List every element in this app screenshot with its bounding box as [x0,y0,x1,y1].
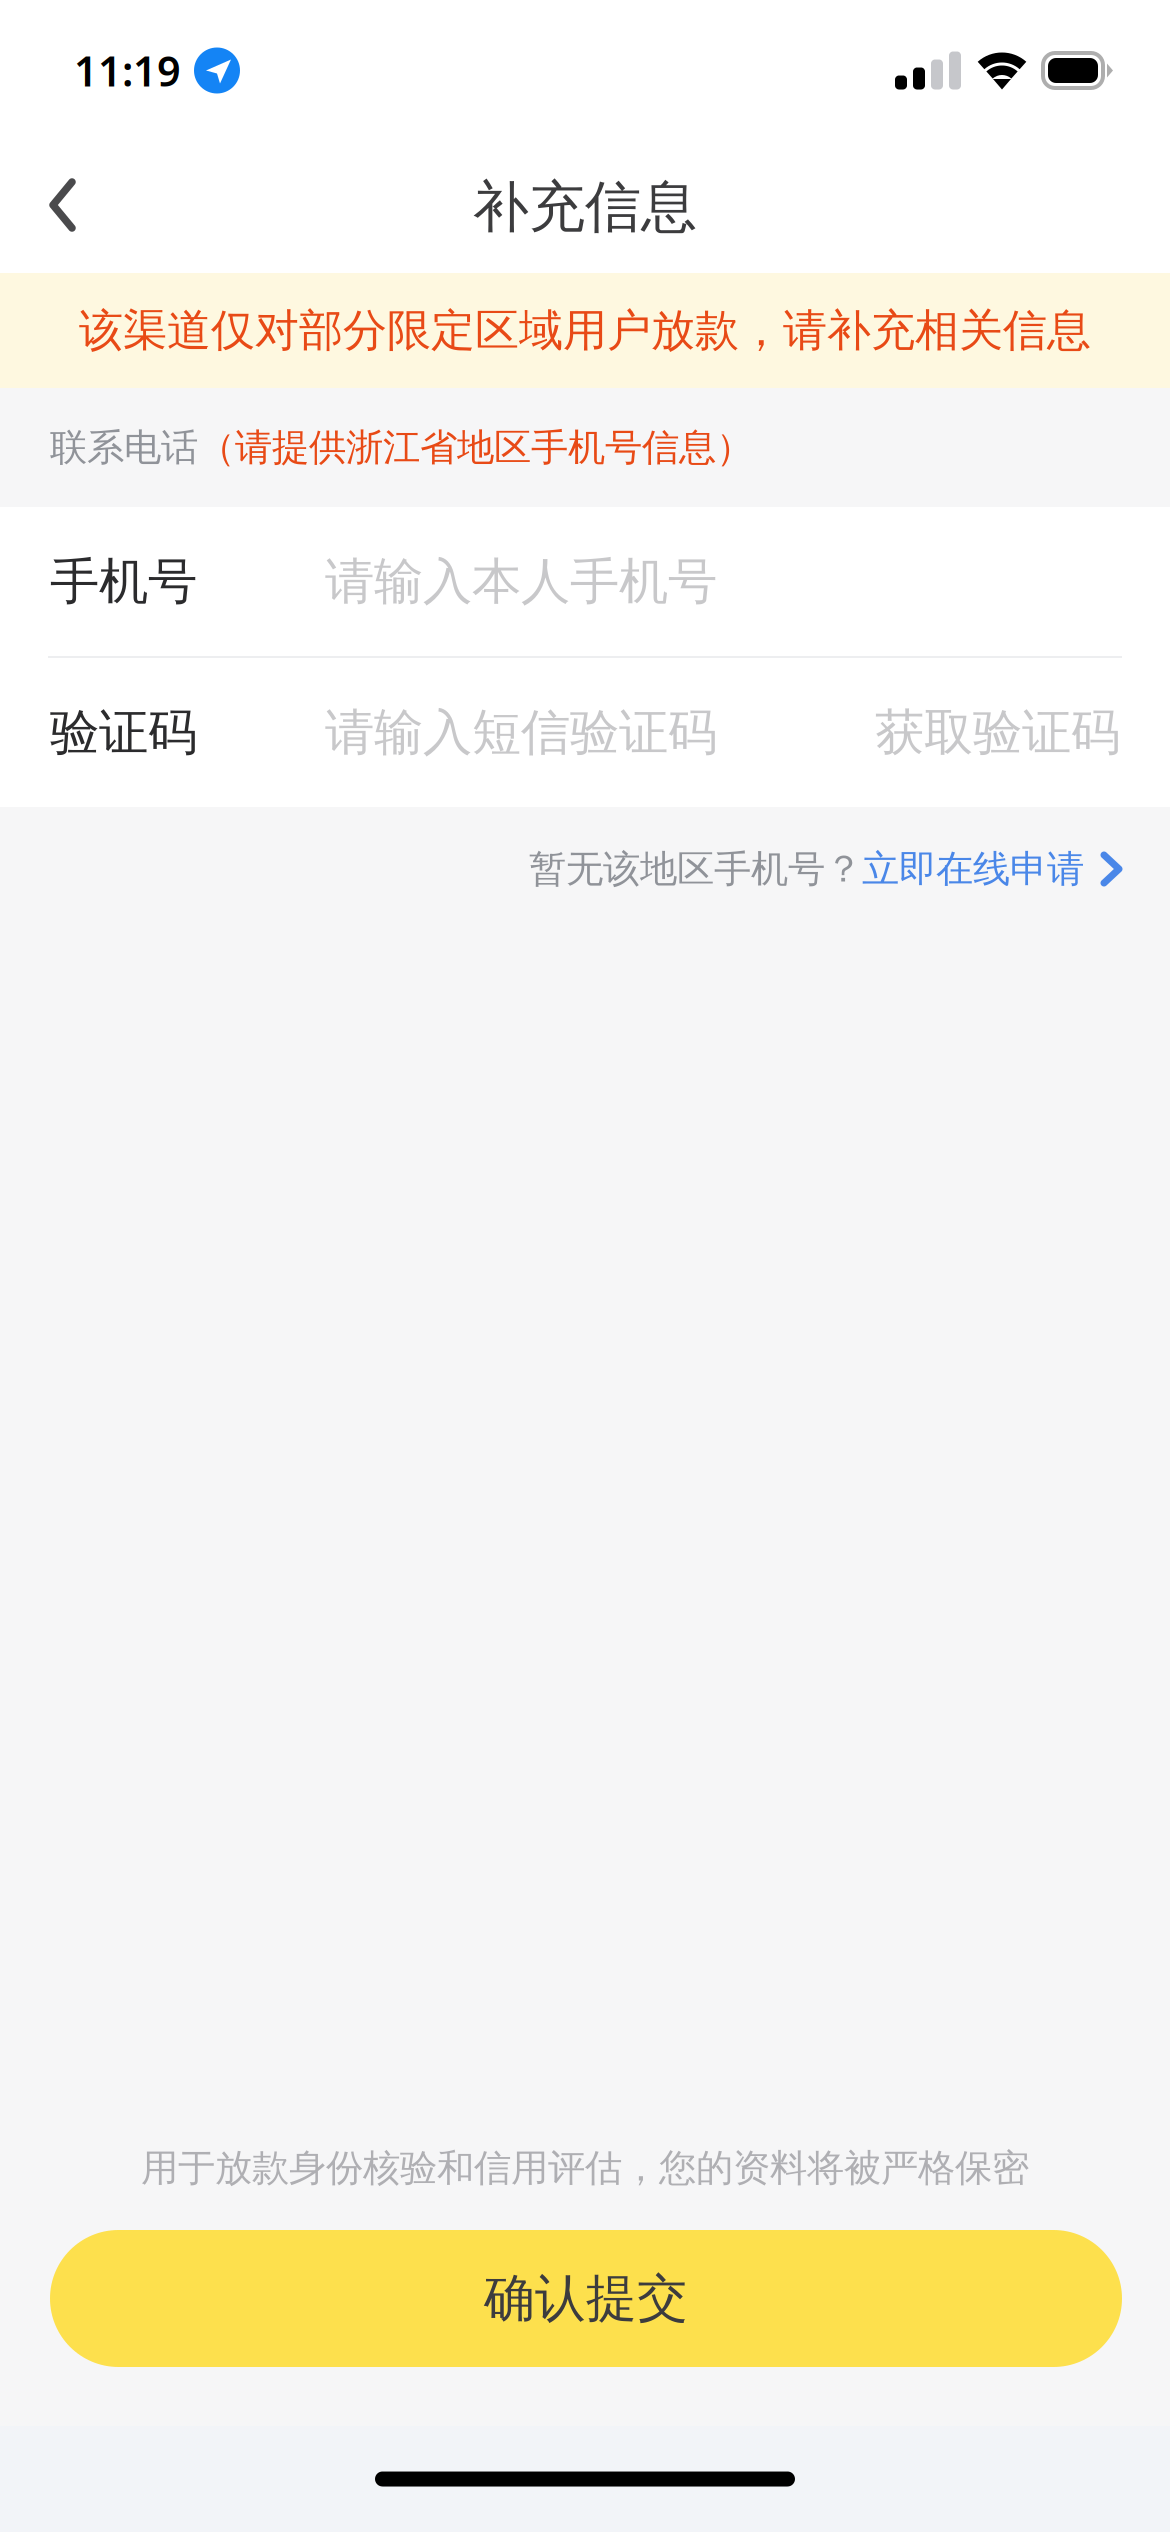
staticText: 用于放款身份核验和信用评估，您的资料将被严格保密 [141,2145,1029,2191]
staticText: 11:19 [74,43,181,98]
staticText: 请输入本人手机号 [325,551,717,612]
staticText: 手机号 [50,551,197,612]
staticText: 验证码 [50,702,197,763]
button[interactable]: 暂无该地区手机号？ [529,807,1170,931]
staticText: 获取验证码 [875,702,1120,763]
staticText: 请输入短信验证码 [325,702,717,763]
staticText: 联系电话 [50,425,198,470]
staticText: 该渠道仅对部分限定区域用户放款，请补充相关信息 [79,303,1091,357]
button[interactable]: Back [0,141,124,273]
staticText: 确认提交 [484,2267,688,2330]
staticText: 补充信息 [473,173,697,241]
button[interactable]: 确认提交 [50,2230,1122,2367]
staticText: 暂无该地区手机号？ [529,846,862,892]
staticText: 立即在线申请 [862,846,1084,892]
button[interactable]: 获取验证码 [875,702,1120,763]
staticText: （请提供浙江省地区手机号信息） [198,425,753,470]
